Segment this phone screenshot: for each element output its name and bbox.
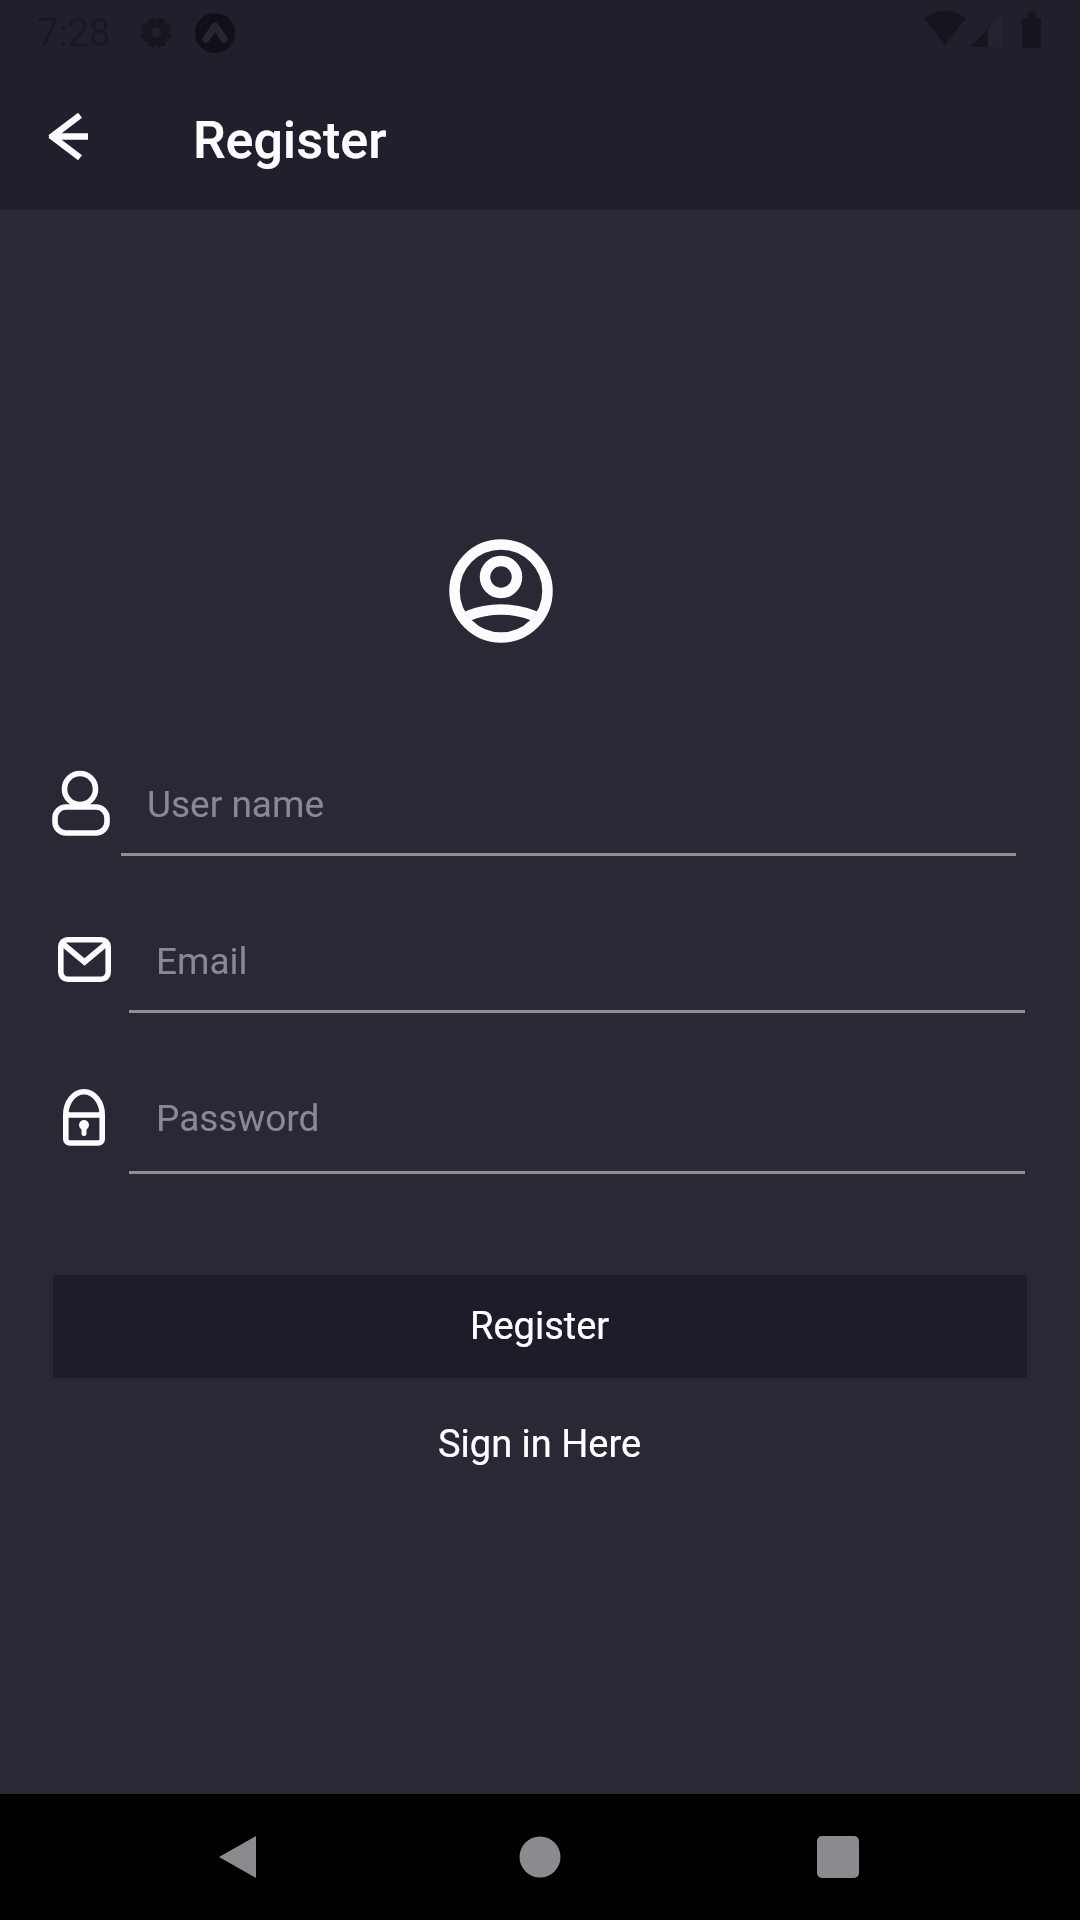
- staticText: Password: [156, 1097, 320, 1140]
- staticText: Register: [193, 110, 387, 171]
- staticText: User name: [147, 783, 325, 826]
- button[interactable]: Sign in Here: [0, 1408, 1080, 1481]
- button[interactable]: [490, 1807, 590, 1907]
- button[interactable]: [188, 1807, 288, 1907]
- staticText: Sign in Here: [438, 1422, 642, 1467]
- staticText: Register: [470, 1304, 610, 1349]
- button[interactable]: [26, 100, 112, 174]
- button[interactable]: [788, 1807, 888, 1907]
- staticText: Email: [156, 940, 248, 983]
- button[interactable]: Register: [53, 1275, 1027, 1378]
